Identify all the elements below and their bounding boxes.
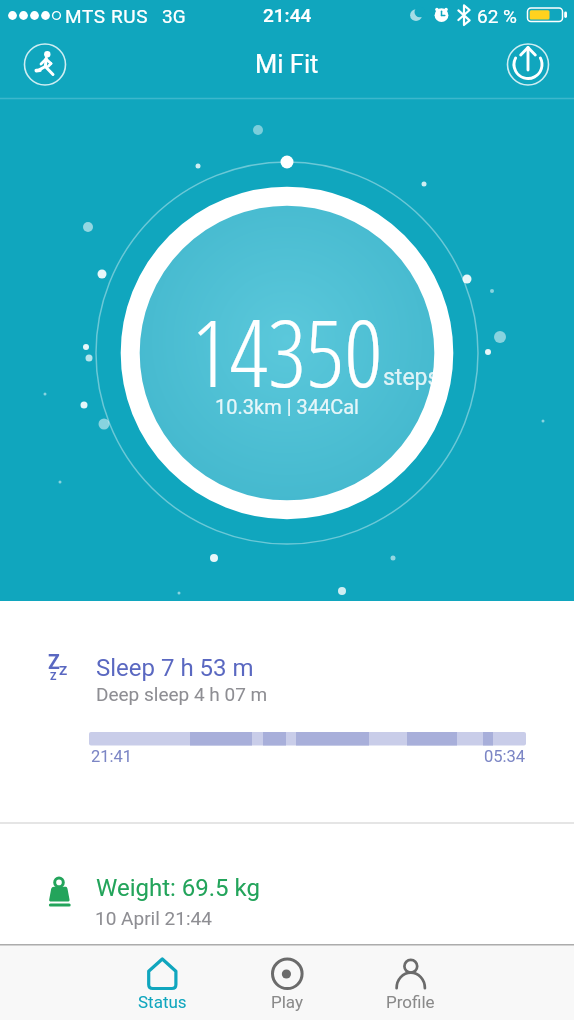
staticText: Status bbox=[138, 992, 187, 1012]
staticText: Z bbox=[59, 662, 68, 678]
staticText: Deep sleep 4 h 07 m bbox=[96, 683, 268, 705]
staticText: 3G bbox=[162, 5, 186, 27]
staticText: 14350 bbox=[191, 289, 383, 414]
staticText: 10 April 21:44 bbox=[95, 907, 212, 929]
staticText: MTS RUS bbox=[65, 5, 149, 27]
staticText: Z bbox=[48, 651, 60, 674]
button[interactable] bbox=[349, 944, 472, 1020]
button[interactable] bbox=[507, 44, 549, 86]
staticText: steps bbox=[383, 364, 440, 391]
staticText: 05:34 bbox=[484, 747, 526, 766]
staticText: Play bbox=[271, 992, 304, 1012]
staticText: Mi Fit bbox=[255, 49, 319, 79]
staticText: Profile bbox=[386, 992, 435, 1012]
staticText: 62 % bbox=[477, 5, 517, 27]
button[interactable] bbox=[226, 944, 349, 1020]
button[interactable] bbox=[0, 835, 574, 940]
staticText: 21:44 bbox=[263, 4, 312, 26]
button[interactable] bbox=[24, 44, 66, 86]
button[interactable] bbox=[0, 615, 574, 805]
staticText: 21:41 bbox=[91, 747, 133, 766]
staticText: Weight: 69.5 kg bbox=[96, 874, 260, 902]
button[interactable] bbox=[101, 944, 224, 1020]
staticText: 10.3km | 344Cal bbox=[215, 395, 359, 418]
staticText: Sleep 7 h 53 m bbox=[96, 654, 254, 682]
button[interactable] bbox=[120, 186, 454, 520]
staticText: Z bbox=[50, 670, 57, 683]
